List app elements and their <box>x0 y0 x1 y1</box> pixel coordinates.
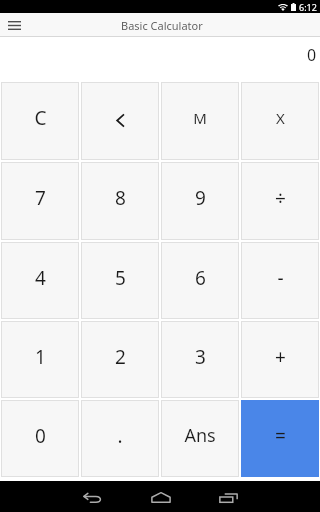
button[interactable]: Home <box>151 481 171 512</box>
staticText: Ans <box>184 423 216 448</box>
button[interactable]: Open navigation menu <box>0 13 29 36</box>
staticText: M <box>193 108 207 128</box>
staticText: ÷ <box>275 185 286 211</box>
button[interactable]: X <box>240 81 320 161</box>
button[interactable]: 6 <box>160 241 240 320</box>
staticText: 0 <box>35 423 46 449</box>
button[interactable]: - <box>240 241 320 320</box>
button[interactable]: C <box>0 81 80 161</box>
button[interactable]: ÷ <box>240 161 320 241</box>
button[interactable]: 2 <box>80 320 160 399</box>
staticText: X <box>276 108 285 128</box>
button[interactable]: Backspace <box>80 81 160 161</box>
staticText: 6 <box>195 265 206 291</box>
staticText: 0 <box>307 44 317 66</box>
staticText: 7 <box>35 185 46 211</box>
staticText: . <box>117 423 123 449</box>
button[interactable]: 0 <box>0 399 80 478</box>
button[interactable]: = <box>240 399 320 478</box>
button[interactable]: . <box>80 399 160 478</box>
button[interactable]: Back <box>83 481 101 512</box>
button[interactable]: Recent apps <box>219 481 238 512</box>
button[interactable]: M <box>160 81 240 161</box>
staticText: = <box>275 423 286 449</box>
button[interactable]: 4 <box>0 241 80 320</box>
button[interactable]: Ans <box>160 399 240 478</box>
staticText: 6:12 <box>299 1 317 13</box>
button[interactable]: 9 <box>160 161 240 241</box>
staticText: - <box>277 265 284 291</box>
staticText: + <box>275 344 286 370</box>
button[interactable]: 3 <box>160 320 240 399</box>
button[interactable]: 7 <box>0 161 80 241</box>
staticText: 8 <box>115 185 126 211</box>
staticText: 2 <box>115 344 126 370</box>
staticText: 4 <box>35 265 46 291</box>
staticText: 5 <box>115 265 126 291</box>
button[interactable]: 5 <box>80 241 160 320</box>
staticText: Basic Calculator <box>121 18 203 33</box>
button[interactable]: 8 <box>80 161 160 241</box>
staticText: C <box>34 105 47 131</box>
button[interactable]: + <box>240 320 320 399</box>
staticText: 3 <box>195 344 206 370</box>
staticText: 9 <box>195 185 206 211</box>
staticText: 1 <box>35 344 46 370</box>
button[interactable]: 1 <box>0 320 80 399</box>
other: Backspace <box>81 82 159 160</box>
